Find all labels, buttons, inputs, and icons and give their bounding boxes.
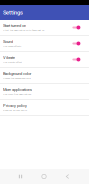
button[interactable]: More applications bbox=[0, 84, 89, 100]
button[interactable]: Recent apps bbox=[9, 169, 32, 184]
button[interactable]: Start turned on bbox=[0, 20, 89, 36]
staticText: Vibrate bbox=[3, 55, 15, 60]
button[interactable]: Privacy policy bbox=[0, 100, 89, 116]
staticText: Background color bbox=[3, 71, 31, 76]
button[interactable]: Back bbox=[56, 169, 79, 184]
staticText: Use vibrate effect bbox=[3, 61, 22, 64]
button[interactable]: Vibrate bbox=[0, 52, 89, 68]
staticText: Read our privacy policy bbox=[3, 109, 27, 112]
staticText: Start turned on bbox=[3, 23, 26, 28]
staticText: Sound bbox=[3, 39, 13, 44]
staticText: See more free applications bbox=[3, 93, 31, 96]
button[interactable]: Sound bbox=[0, 36, 89, 52]
staticText: More applications bbox=[3, 87, 32, 92]
button[interactable]: Background color bbox=[0, 68, 89, 84]
staticText: Privacy policy bbox=[3, 103, 27, 108]
staticText: Use sound effects bbox=[3, 45, 21, 48]
staticText: Start the application with flashlight on bbox=[3, 29, 44, 32]
staticText: Settings bbox=[3, 9, 23, 16]
staticText: Choose the background color bbox=[3, 77, 31, 80]
button[interactable]: Home bbox=[32, 169, 56, 184]
